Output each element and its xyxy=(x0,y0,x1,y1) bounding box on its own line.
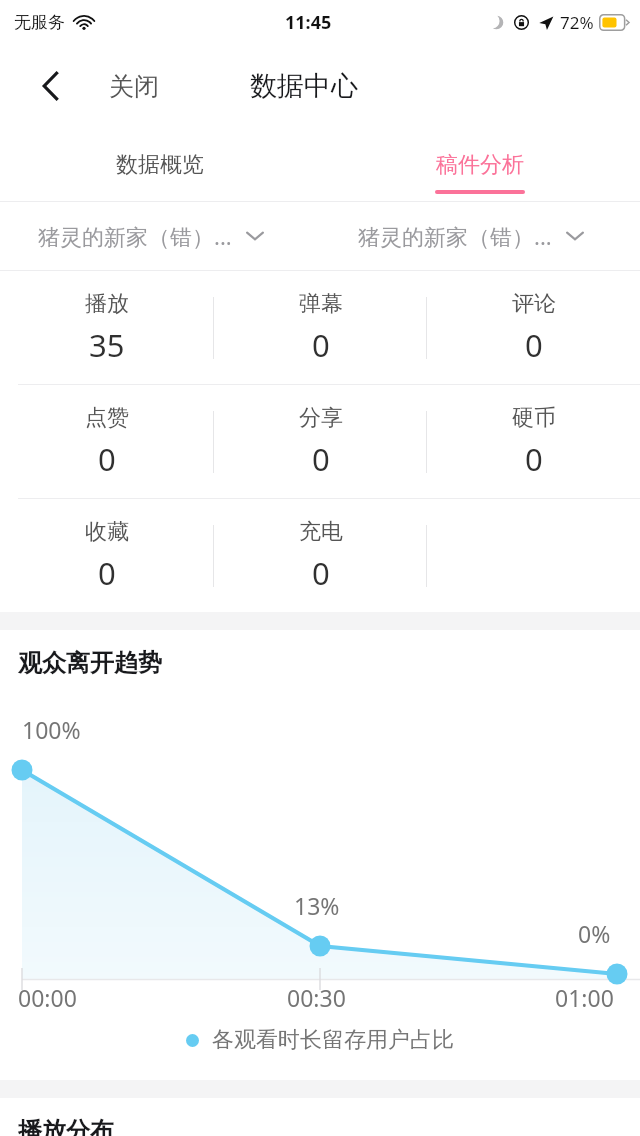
staticText: 100% xyxy=(22,714,81,745)
staticText: 稿件分析 xyxy=(436,151,524,179)
staticText: 0 xyxy=(98,438,116,480)
staticText: 13% xyxy=(294,890,340,921)
staticText: 点赞 xyxy=(85,404,129,432)
staticText: 无服务 xyxy=(14,12,65,33)
staticText: 0 xyxy=(98,552,116,594)
staticText: 猪灵的新家（错）... xyxy=(358,221,552,251)
button[interactable]: 数据概览 xyxy=(0,127,320,201)
staticText: 关闭 xyxy=(109,71,159,102)
staticText: 硬币 xyxy=(512,404,556,432)
staticText: 播放分布 xyxy=(18,1116,114,1136)
staticText: 00:30 xyxy=(287,982,346,1013)
staticText: 0% xyxy=(578,918,611,949)
button[interactable]: 分享 xyxy=(214,385,427,498)
button[interactable]: 播放 xyxy=(0,271,214,384)
staticText: 0 xyxy=(525,324,543,366)
button[interactable]: 返回 xyxy=(28,63,74,109)
staticText: 观众离开趋势 xyxy=(18,648,162,678)
button[interactable]: 猪灵的新家（错）... xyxy=(320,201,640,270)
staticText: 00:00 xyxy=(18,982,77,1013)
button[interactable]: 关闭 xyxy=(103,63,165,110)
staticText: 数据中心 xyxy=(250,69,358,103)
button[interactable]: 点赞 xyxy=(0,385,214,498)
button[interactable]: 评论 xyxy=(427,271,640,384)
staticText: 0 xyxy=(525,438,543,480)
staticText: 收藏 xyxy=(85,518,129,546)
button[interactable]: 稿件分析 xyxy=(320,127,640,201)
staticText: 分享 xyxy=(299,404,343,432)
staticText: 72% xyxy=(560,11,594,34)
staticText: 11:45 xyxy=(285,10,332,35)
staticText: 0 xyxy=(312,552,330,594)
button[interactable]: 弹幕 xyxy=(214,271,427,384)
button[interactable]: 充电 xyxy=(214,499,427,612)
button[interactable]: 收藏 xyxy=(0,499,214,612)
staticText: 0 xyxy=(312,324,330,366)
staticText: 猪灵的新家（错）... xyxy=(38,221,232,251)
staticText: 评论 xyxy=(512,290,556,318)
staticText: 0 xyxy=(312,438,330,480)
staticText: 35 xyxy=(89,324,125,366)
staticText: 充电 xyxy=(299,518,343,546)
staticText: 弹幕 xyxy=(299,290,343,318)
staticText: 01:00 xyxy=(555,982,614,1013)
button[interactable]: 猪灵的新家（错）... xyxy=(0,201,320,270)
staticText: 数据概览 xyxy=(116,151,204,179)
staticText: 各观看时长留存用户占比 xyxy=(212,1026,454,1054)
staticText: 播放 xyxy=(85,290,129,318)
button[interactable]: 硬币 xyxy=(427,385,640,498)
